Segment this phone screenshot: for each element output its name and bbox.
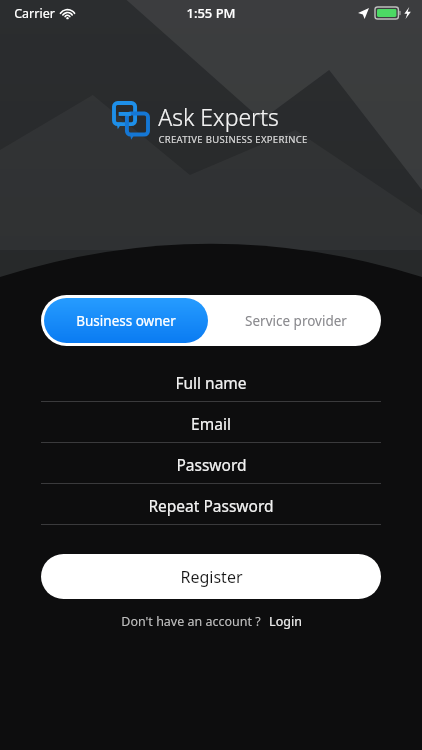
staticText: Email xyxy=(191,413,231,434)
staticText: Don't have an account ? xyxy=(121,613,261,630)
button[interactable]: Register xyxy=(41,554,381,599)
button[interactable]: Password xyxy=(41,449,381,490)
staticText: 1:55 PM xyxy=(186,4,236,22)
button[interactable]: Login xyxy=(269,613,302,630)
button[interactable]: Repeat Password xyxy=(41,490,381,531)
staticText: Repeat Password xyxy=(148,495,274,516)
staticText: Login xyxy=(269,613,302,630)
staticText: Carrier xyxy=(14,5,55,22)
button[interactable]: Full name xyxy=(41,367,381,408)
staticText: CREATIVE BUSINESS EXPERINCE xyxy=(158,133,308,146)
staticText: Business owner xyxy=(76,312,176,330)
staticText: Register xyxy=(180,566,243,588)
button[interactable]: Service provider xyxy=(211,295,381,346)
staticText: Service provider xyxy=(245,312,347,330)
staticText: Ask Experts xyxy=(158,101,279,132)
staticText: Full name xyxy=(175,372,247,393)
staticText: Password xyxy=(176,454,247,475)
button[interactable]: Business owner xyxy=(44,298,208,343)
button[interactable]: Email xyxy=(41,408,381,449)
